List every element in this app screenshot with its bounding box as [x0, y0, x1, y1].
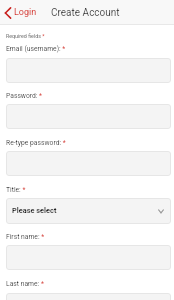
staticText: Required fields * — [6, 33, 45, 39]
button[interactable] — [6, 293, 171, 300]
button[interactable] — [6, 104, 171, 129]
staticText: Login — [14, 7, 37, 18]
staticText: Title: * — [6, 186, 26, 194]
staticText: Last name: * — [6, 280, 44, 288]
staticText: Email (username): * — [6, 45, 66, 53]
staticText: Password: * — [6, 92, 43, 100]
button[interactable]: Back to Login — [0, 0, 39, 24]
staticText: Please select — [12, 206, 57, 215]
button[interactable] — [6, 151, 171, 176]
staticText: First name: * — [6, 233, 45, 241]
button[interactable]: Please select — [6, 198, 171, 224]
button[interactable] — [6, 58, 171, 83]
staticText: Re-type password: * — [6, 139, 66, 147]
staticText: Create Account — [51, 7, 120, 19]
button[interactable] — [6, 245, 171, 270]
